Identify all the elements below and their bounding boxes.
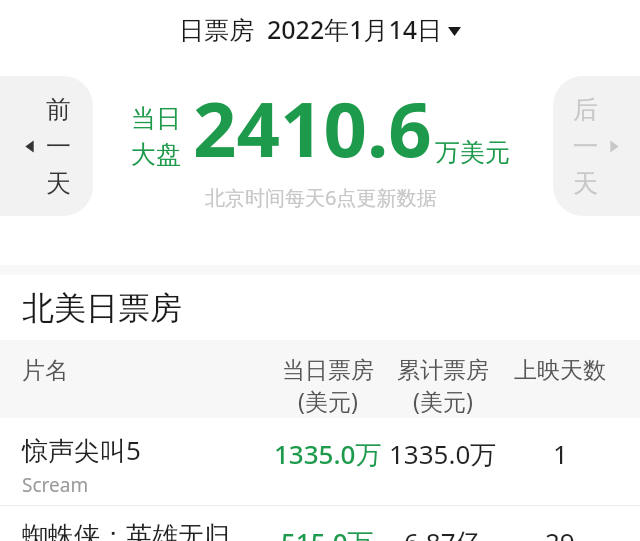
staticText: 累计票房 (美元) — [397, 356, 489, 416]
button[interactable]: 后一天 — [553, 76, 640, 216]
staticText: 惊声尖叫5 — [22, 432, 141, 468]
staticText: 1 — [553, 436, 568, 471]
staticText: 前 一 天 — [46, 94, 71, 199]
staticText: 蜘蛛侠：英雄无归 — [22, 520, 230, 541]
button[interactable]: 蜘蛛侠：英雄无归 — [0, 506, 640, 541]
staticText: 6.87亿 — [404, 524, 482, 541]
button[interactable]: 日票房 2022年1月14日 — [171, 12, 469, 46]
staticText: 2410.6 — [193, 76, 432, 180]
staticText: 万美元 — [435, 137, 510, 168]
staticText: 1335.0万 — [274, 436, 382, 472]
staticText: Scream — [22, 472, 89, 498]
button[interactable]: 惊声尖叫5 — [0, 418, 640, 505]
staticText: 上映天数 — [514, 356, 606, 385]
staticText: 后 一 天 — [573, 94, 598, 199]
staticText: 1335.0万 — [389, 436, 497, 472]
staticText: 北美日票房 — [22, 288, 182, 328]
staticText: 515.0万 — [281, 524, 374, 541]
staticText: 29 — [545, 524, 575, 541]
staticText: 日票房 2022年1月14日 — [179, 12, 443, 46]
button[interactable]: 前一天 — [0, 76, 93, 216]
staticText: 片名 — [22, 356, 68, 385]
staticText: 当日票房 (美元) — [282, 356, 374, 416]
staticText: 当日 大盘 — [131, 103, 181, 170]
staticText: 北京时间每天6点更新数据 — [205, 184, 437, 211]
